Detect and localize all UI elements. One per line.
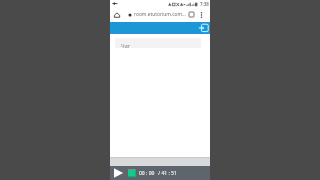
staticText: 7:38	[200, 1, 209, 7]
button[interactable]: Stop	[127, 167, 138, 178]
button[interactable]: Back	[111, 0, 119, 7]
staticText: Чат	[121, 42, 131, 49]
button[interactable]: More options	[197, 10, 206, 19]
staticText: 00 : 00 / 41 : 51	[139, 170, 177, 177]
button[interactable]: Exit	[198, 23, 208, 33]
staticText: room.etutorium.com...	[134, 11, 187, 18]
button[interactable]: Чат	[115, 38, 201, 48]
button[interactable]: Tabs	[187, 10, 196, 19]
button[interactable]: Play	[112, 167, 125, 180]
button[interactable]: Home	[112, 10, 121, 19]
